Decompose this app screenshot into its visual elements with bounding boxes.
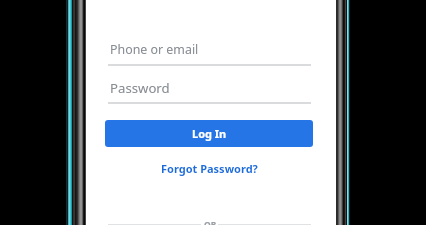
button[interactable]: Forgot Password? [105, 158, 313, 178]
staticText: Forgot Password? [161, 161, 258, 176]
staticText: Log In [192, 126, 227, 141]
button[interactable]: Password [105, 72, 313, 104]
staticText: Phone or email [110, 41, 199, 58]
staticText: OR [204, 219, 217, 225]
button[interactable]: Phone or email [105, 34, 313, 66]
button[interactable]: Log In [105, 120, 313, 147]
staticText: Password [110, 79, 170, 97]
